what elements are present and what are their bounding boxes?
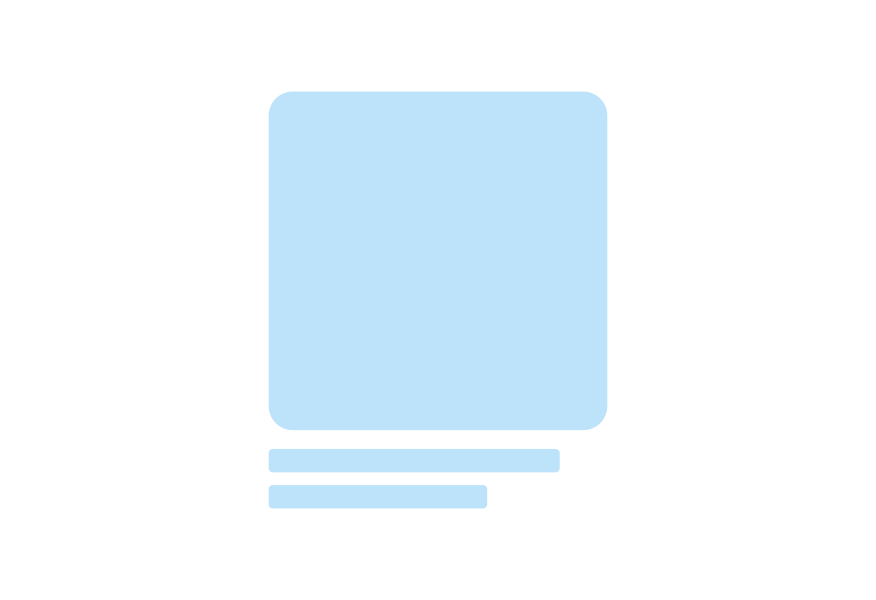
- button[interactable]: Loading content: [269, 92, 607, 508]
